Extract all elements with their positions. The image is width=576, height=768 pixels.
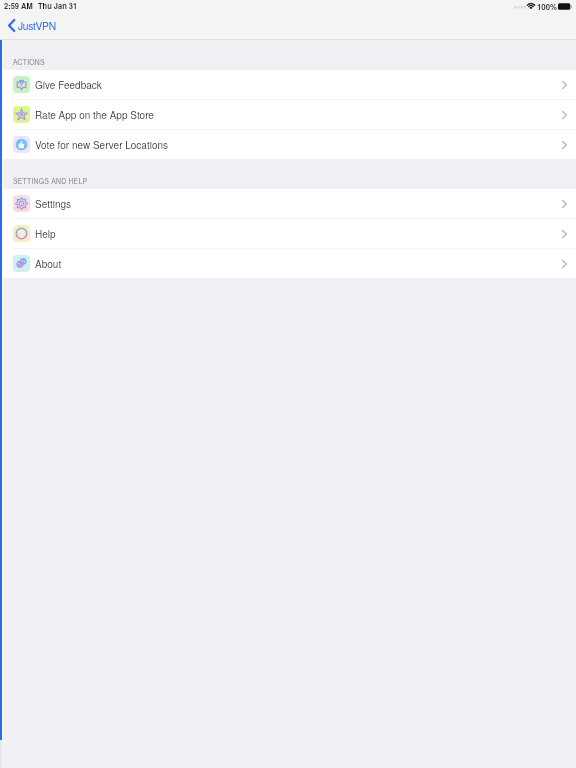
button[interactable]: About	[3, 249, 576, 278]
staticText: JustVPN	[18, 18, 56, 33]
staticText: Rate App on the App Store	[35, 108, 154, 122]
staticText: ACTIONS	[13, 57, 45, 67]
button[interactable]: Settings	[3, 189, 576, 218]
button[interactable]: Give Feedback	[3, 70, 576, 99]
staticText: SETTINGS AND HELP	[13, 176, 88, 186]
staticText: Help	[35, 227, 56, 241]
button[interactable]: Vote for new Server Locations	[3, 130, 576, 159]
staticText: Thu Jan 31	[38, 1, 78, 12]
staticText: About	[35, 257, 62, 271]
staticText: Give Feedback	[35, 78, 102, 92]
staticText: Settings	[35, 197, 72, 211]
staticText: Vote for new Server Locations	[35, 138, 169, 152]
staticText: 2:59 AM	[4, 1, 33, 12]
button[interactable]: JustVPN	[0, 15, 66, 36]
staticText: 100%	[537, 1, 557, 12]
button[interactable]: Help	[3, 219, 576, 248]
button[interactable]: Rate App on the App Store	[3, 100, 576, 129]
